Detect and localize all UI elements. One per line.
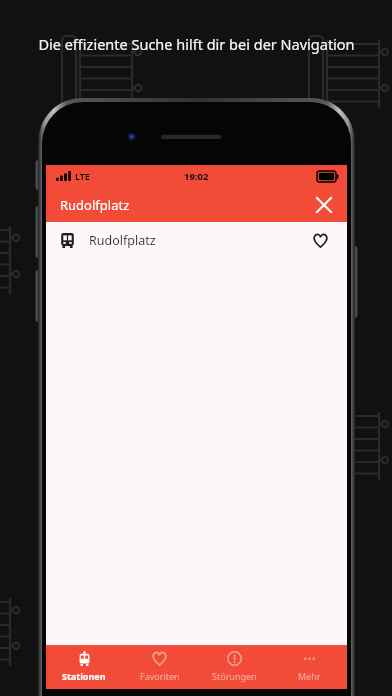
- staticText: Rudolfplatz: [89, 232, 156, 249]
- button[interactable]: Zu Favoriten hinzufügen: [307, 227, 333, 253]
- staticText: Störungen: [212, 670, 257, 682]
- button[interactable]: Stationen: [46, 645, 122, 689]
- staticText: Stationen: [62, 670, 106, 682]
- button[interactable]: Favoriten: [122, 645, 197, 689]
- button[interactable]: Suche schließen: [309, 190, 339, 220]
- staticText: Favoriten: [140, 670, 180, 682]
- staticText: LTE: [75, 170, 90, 182]
- button[interactable]: Störungen: [197, 645, 272, 689]
- button[interactable]: Mehr: [272, 645, 347, 689]
- staticText: 19:02: [184, 170, 209, 183]
- staticText: Mehr: [298, 670, 321, 682]
- staticText: Die effiziente Suche hilft dir bei der N…: [38, 34, 355, 54]
- staticText: Rudolfplatz: [60, 196, 130, 214]
- button[interactable]: Rudolfplatz: [46, 222, 347, 258]
